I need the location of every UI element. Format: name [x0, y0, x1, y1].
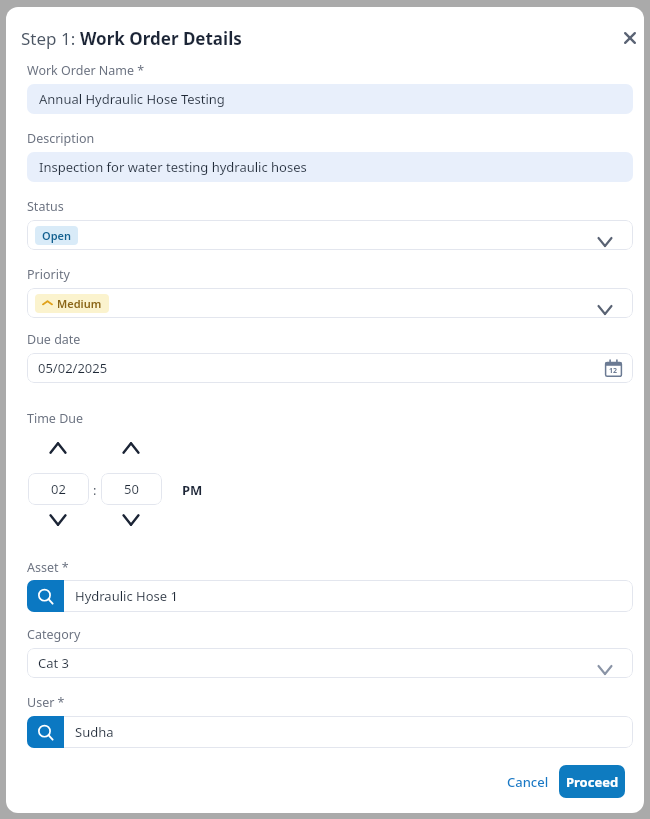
staticText: Status: [27, 198, 64, 215]
staticText: Category: [27, 626, 81, 643]
button[interactable]: 02: [28, 473, 89, 505]
button[interactable]: Annual Hydraulic Hose Testing: [27, 84, 633, 114]
staticText: Inspection for water testing hydraulic h…: [39, 158, 307, 176]
staticText: PM: [182, 481, 203, 499]
staticText: 02: [51, 480, 66, 498]
staticText: Time Due: [27, 410, 84, 427]
button[interactable]: Inspection for water testing hydraulic h…: [27, 152, 633, 182]
staticText: Proceed: [566, 773, 619, 791]
staticText: Annual Hydraulic Hose Testing: [39, 90, 225, 108]
staticText: Step 1:: [21, 27, 80, 50]
button[interactable]: Search user: [27, 716, 64, 748]
button[interactable]: Decrease hour: [36, 507, 80, 533]
staticText: 05/02/2025: [38, 359, 108, 377]
staticText: Asset *: [27, 559, 69, 576]
button[interactable]: Sudha: [27, 716, 633, 748]
staticText: Due date: [27, 331, 81, 348]
button[interactable]: Increase minute: [109, 435, 153, 461]
staticText: 50: [124, 480, 139, 498]
button[interactable]: Decrease minute: [109, 507, 153, 533]
staticText: Work Order Name *: [27, 62, 145, 79]
button[interactable]: Cat 3: [27, 648, 633, 678]
button[interactable]: Proceed: [559, 765, 625, 798]
staticText: 12: [609, 366, 618, 376]
staticText: :: [93, 481, 97, 499]
staticText: Sudha: [75, 723, 114, 741]
button[interactable]: Hydraulic Hose 1: [27, 580, 633, 612]
staticText: Description: [27, 130, 95, 147]
button[interactable]: Close: [611, 19, 644, 57]
staticText: Hydraulic Hose 1: [75, 587, 178, 605]
button[interactable]: Medium: [27, 288, 633, 318]
button[interactable]: Increase hour: [36, 435, 80, 461]
staticText: Priority: [27, 266, 70, 283]
staticText: Cancel: [507, 773, 549, 791]
button[interactable]: Pick date: [603, 358, 623, 378]
button[interactable]: Open: [27, 220, 633, 250]
button[interactable]: 50: [101, 473, 162, 505]
staticText: Cat 3: [38, 654, 70, 672]
staticText: User *: [27, 694, 65, 711]
button[interactable]: 05/02/2025: [27, 353, 633, 383]
staticText: Medium: [57, 296, 102, 311]
staticText: Work Order Details: [80, 27, 242, 50]
staticText: Open: [42, 228, 71, 243]
button[interactable]: Search asset: [27, 580, 64, 612]
button[interactable]: Cancel: [500, 767, 556, 797]
